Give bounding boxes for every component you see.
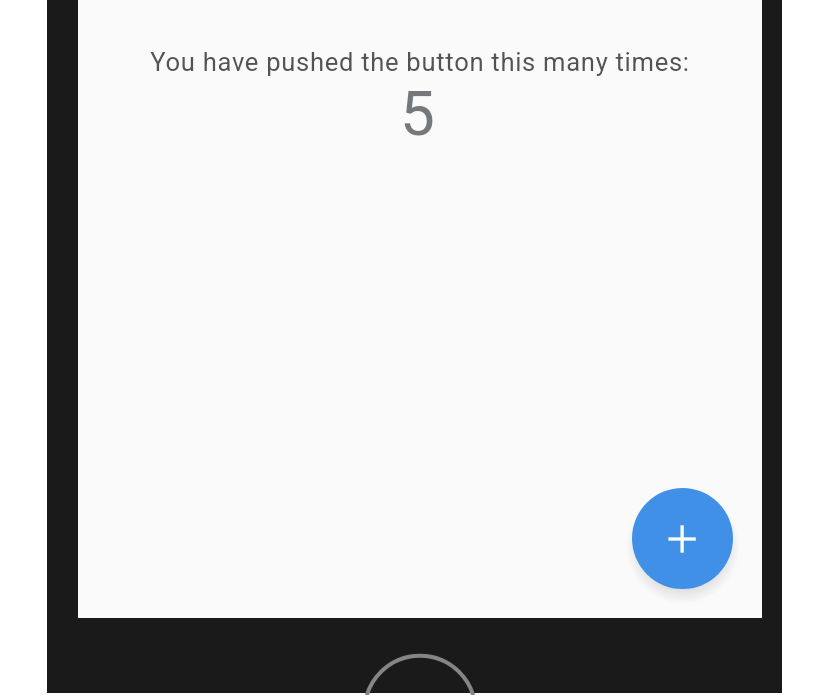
staticText: 5 [400, 77, 435, 150]
button[interactable]: Increment counter [632, 488, 733, 589]
staticText: You have pushed the button this many tim… [150, 47, 690, 77]
